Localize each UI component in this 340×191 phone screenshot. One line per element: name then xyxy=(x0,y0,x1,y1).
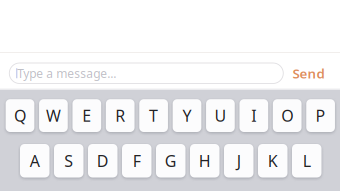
button[interactable]: T xyxy=(139,99,168,132)
button[interactable]: K xyxy=(258,144,287,177)
staticText: P xyxy=(316,105,326,126)
button[interactable]: W xyxy=(39,99,68,132)
button[interactable]: Type a message... xyxy=(9,63,283,83)
button[interactable]: E xyxy=(72,99,101,132)
staticText: J xyxy=(237,150,241,171)
staticText: Y xyxy=(182,105,191,126)
button[interactable]: H xyxy=(190,144,219,177)
button[interactable]: P xyxy=(306,99,335,132)
button[interactable]: Y xyxy=(173,99,201,132)
staticText: Send xyxy=(292,64,324,82)
staticText: O xyxy=(281,105,293,126)
button[interactable]: Q xyxy=(6,99,34,132)
button[interactable]: J xyxy=(224,144,253,177)
staticText: G xyxy=(165,150,177,171)
button[interactable]: O xyxy=(273,99,302,132)
staticText: T xyxy=(149,105,158,126)
staticText: Q xyxy=(14,105,26,126)
staticText: I xyxy=(251,105,256,126)
staticText: U xyxy=(214,105,226,126)
button[interactable]: A xyxy=(20,144,49,177)
button[interactable]: S xyxy=(54,144,83,177)
staticText: Type a message... xyxy=(17,65,116,81)
staticText: H xyxy=(199,150,211,171)
button[interactable]: Send xyxy=(286,63,330,83)
staticText: S xyxy=(64,150,73,171)
button[interactable]: F xyxy=(122,144,151,177)
button[interactable]: L xyxy=(292,144,321,177)
button[interactable]: G xyxy=(156,144,185,177)
button[interactable]: D xyxy=(88,144,117,177)
staticText: D xyxy=(97,150,109,171)
staticText: F xyxy=(133,150,141,171)
button[interactable]: I xyxy=(239,99,268,132)
staticText: L xyxy=(303,150,311,171)
staticText: E xyxy=(82,105,91,126)
staticText: R xyxy=(115,105,125,126)
button[interactable]: U xyxy=(206,99,235,132)
staticText: W xyxy=(46,105,61,126)
staticText: A xyxy=(30,150,40,171)
staticText: K xyxy=(268,150,278,171)
button[interactable]: R xyxy=(106,99,135,132)
